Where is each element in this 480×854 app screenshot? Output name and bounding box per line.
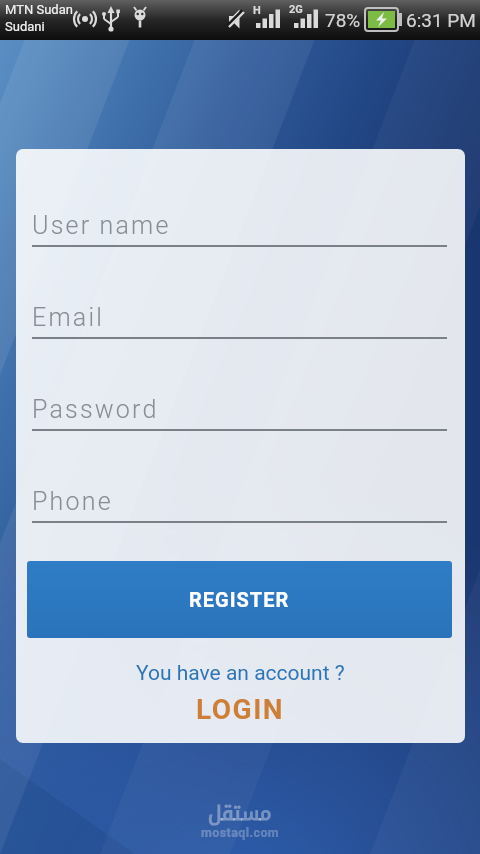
staticText: مستقل	[208, 794, 272, 832]
staticText: H	[253, 4, 261, 17]
staticText: Sudani	[5, 19, 45, 34]
staticText: User name	[32, 211, 171, 240]
button[interactable]: REGISTER	[27, 561, 452, 638]
staticText: Phone	[32, 487, 113, 516]
staticText: You have an account ?	[136, 661, 345, 686]
button[interactable]: LOGIN	[16, 689, 465, 729]
staticText: Password	[32, 395, 159, 424]
staticText: MTN Sudan	[5, 2, 73, 17]
button[interactable]: Password	[32, 389, 447, 429]
staticText: LOGIN	[196, 693, 285, 726]
staticText: Email	[32, 303, 105, 332]
staticText: 2G	[289, 3, 303, 16]
button[interactable]: User name	[32, 205, 447, 245]
button[interactable]: Phone	[32, 481, 447, 521]
staticText: REGISTER	[189, 588, 290, 611]
staticText: 78%	[325, 9, 361, 31]
button[interactable]: Email	[32, 297, 447, 337]
staticText: mostaql.com	[201, 825, 280, 840]
staticText: 6:31 PM	[406, 9, 476, 31]
